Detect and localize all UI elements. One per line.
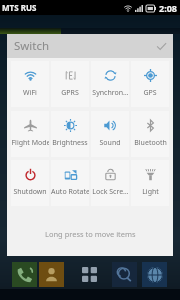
staticText: Synchron…	[92, 88, 129, 98]
staticText: Light	[142, 187, 159, 197]
staticText: Bluetooth	[134, 138, 167, 148]
staticText: Lock Scre…	[92, 187, 129, 197]
button[interactable]: Lock Scre…	[91, 160, 129, 206]
button[interactable]: WiFi	[11, 61, 49, 107]
button[interactable]: Contacts	[39, 262, 64, 287]
button[interactable]: GPS	[131, 61, 169, 107]
staticText: MTS RUS	[2, 2, 37, 13]
staticText: Flight Mode	[11, 138, 49, 148]
button[interactable]: Brightness	[51, 111, 89, 157]
staticText: Sound	[99, 138, 121, 148]
staticText: Brightness	[52, 138, 88, 148]
button[interactable]: Switch	[7, 34, 173, 58]
button[interactable]: Shutdown	[11, 160, 49, 206]
button[interactable]: Auto Rotate	[51, 160, 89, 206]
button[interactable]: GPRS	[51, 61, 89, 107]
staticText: GPRS	[61, 88, 79, 98]
staticText: Shutdown	[13, 187, 47, 197]
button[interactable]: Synchron…	[91, 61, 129, 107]
button[interactable]: Flight Mode	[11, 111, 49, 157]
staticText: 2:08	[159, 2, 177, 14]
button[interactable]: Light	[131, 160, 169, 206]
button[interactable]: Phone	[12, 262, 37, 287]
button[interactable]: Sound	[91, 111, 129, 157]
button[interactable]: Bluetooth	[131, 111, 169, 157]
button[interactable]: Messages	[112, 262, 137, 287]
button[interactable]: Browser	[142, 262, 167, 287]
staticText: GPS	[143, 88, 157, 98]
staticText: Long press to move items	[45, 229, 136, 239]
button[interactable]: All apps	[77, 262, 102, 287]
staticText: WiFi	[23, 88, 37, 98]
staticText: Auto Rotate	[51, 187, 89, 197]
staticText: Switch	[14, 38, 50, 54]
